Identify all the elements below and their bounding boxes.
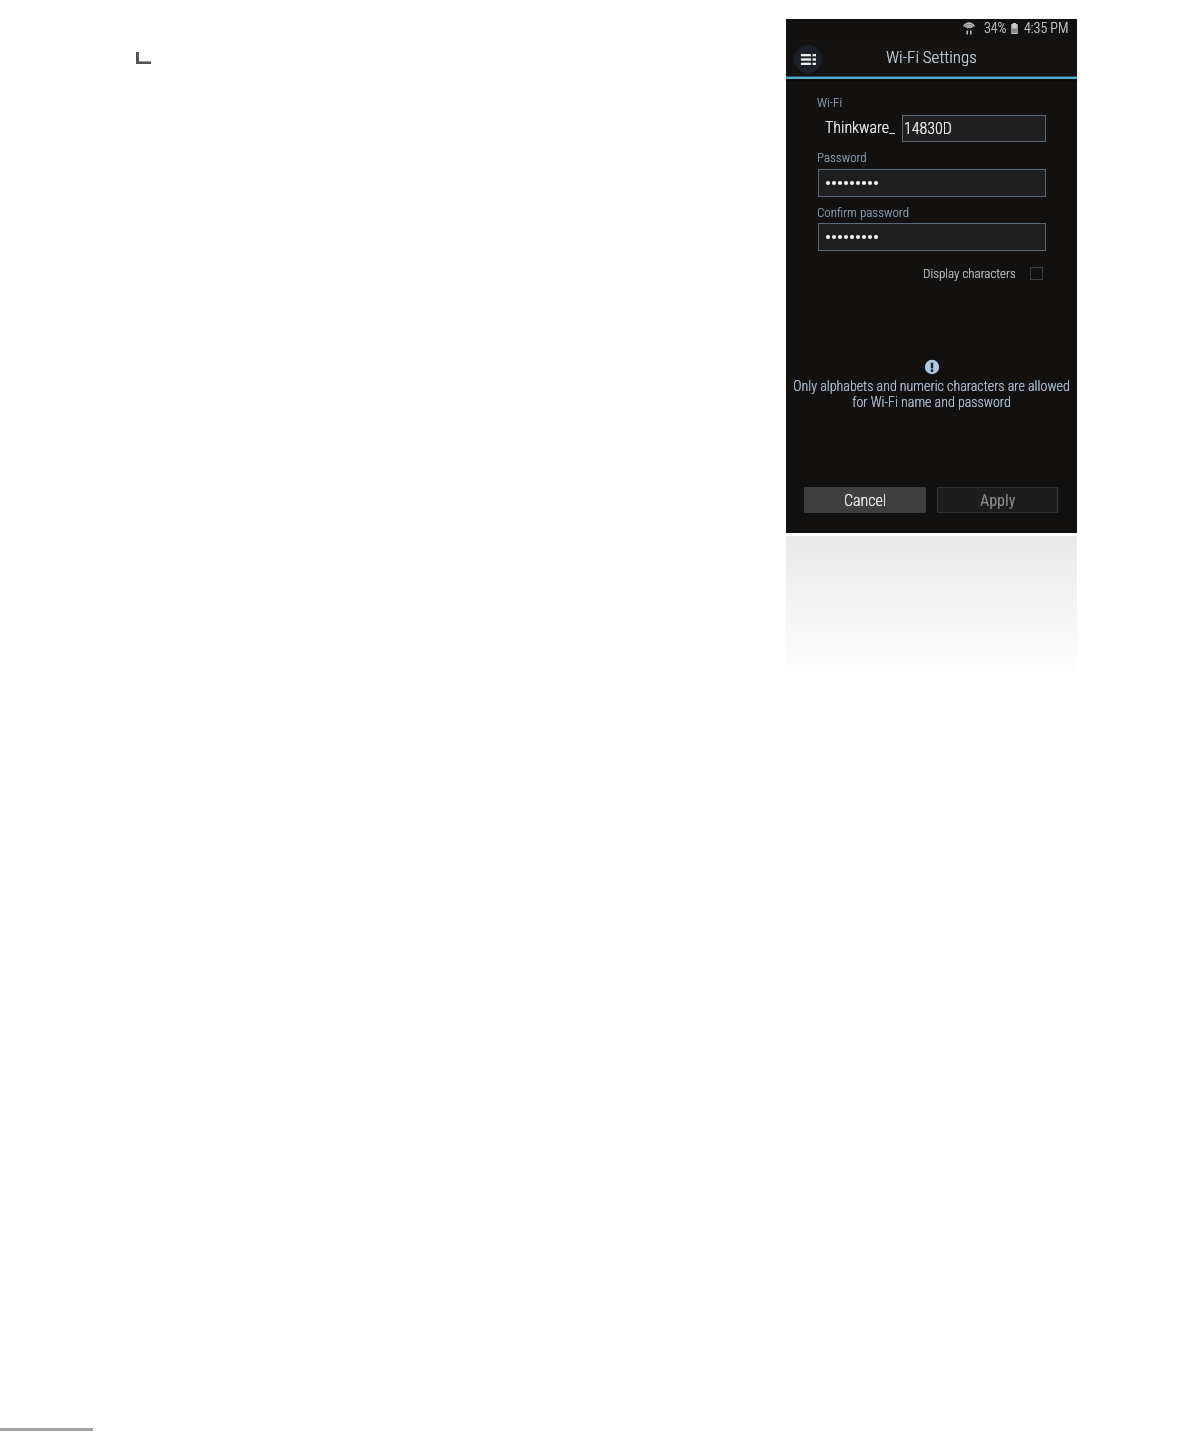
other: Information — [924, 359, 940, 375]
button[interactable]: Cancel — [804, 487, 926, 513]
staticText: Apply — [980, 491, 1016, 510]
staticText: 14830D — [904, 119, 952, 138]
button[interactable]: Display characters — [917, 262, 1043, 284]
staticText: 34% — [984, 20, 1007, 36]
staticText: Password — [817, 150, 867, 165]
staticText: 4:35 PM — [1024, 20, 1069, 36]
button[interactable]: Wi-Fi name — [902, 115, 1046, 142]
button[interactable]: Apply — [937, 487, 1058, 513]
button[interactable]: Confirm password — [818, 223, 1046, 251]
staticText: Wi-Fi — [817, 95, 843, 110]
staticText: Confirm password — [817, 205, 909, 220]
button[interactable]: Menu — [794, 45, 822, 73]
staticText: Thinkware_ — [825, 118, 896, 137]
staticText: Only alphabets and numeric characters ar… — [786, 378, 1077, 410]
other: Display characters checkbox — [1030, 267, 1043, 280]
staticText: Wi-Fi Settings — [886, 47, 977, 67]
staticText: Display characters — [923, 266, 1016, 281]
staticText: Cancel — [844, 491, 887, 510]
button[interactable]: Password — [818, 169, 1046, 197]
